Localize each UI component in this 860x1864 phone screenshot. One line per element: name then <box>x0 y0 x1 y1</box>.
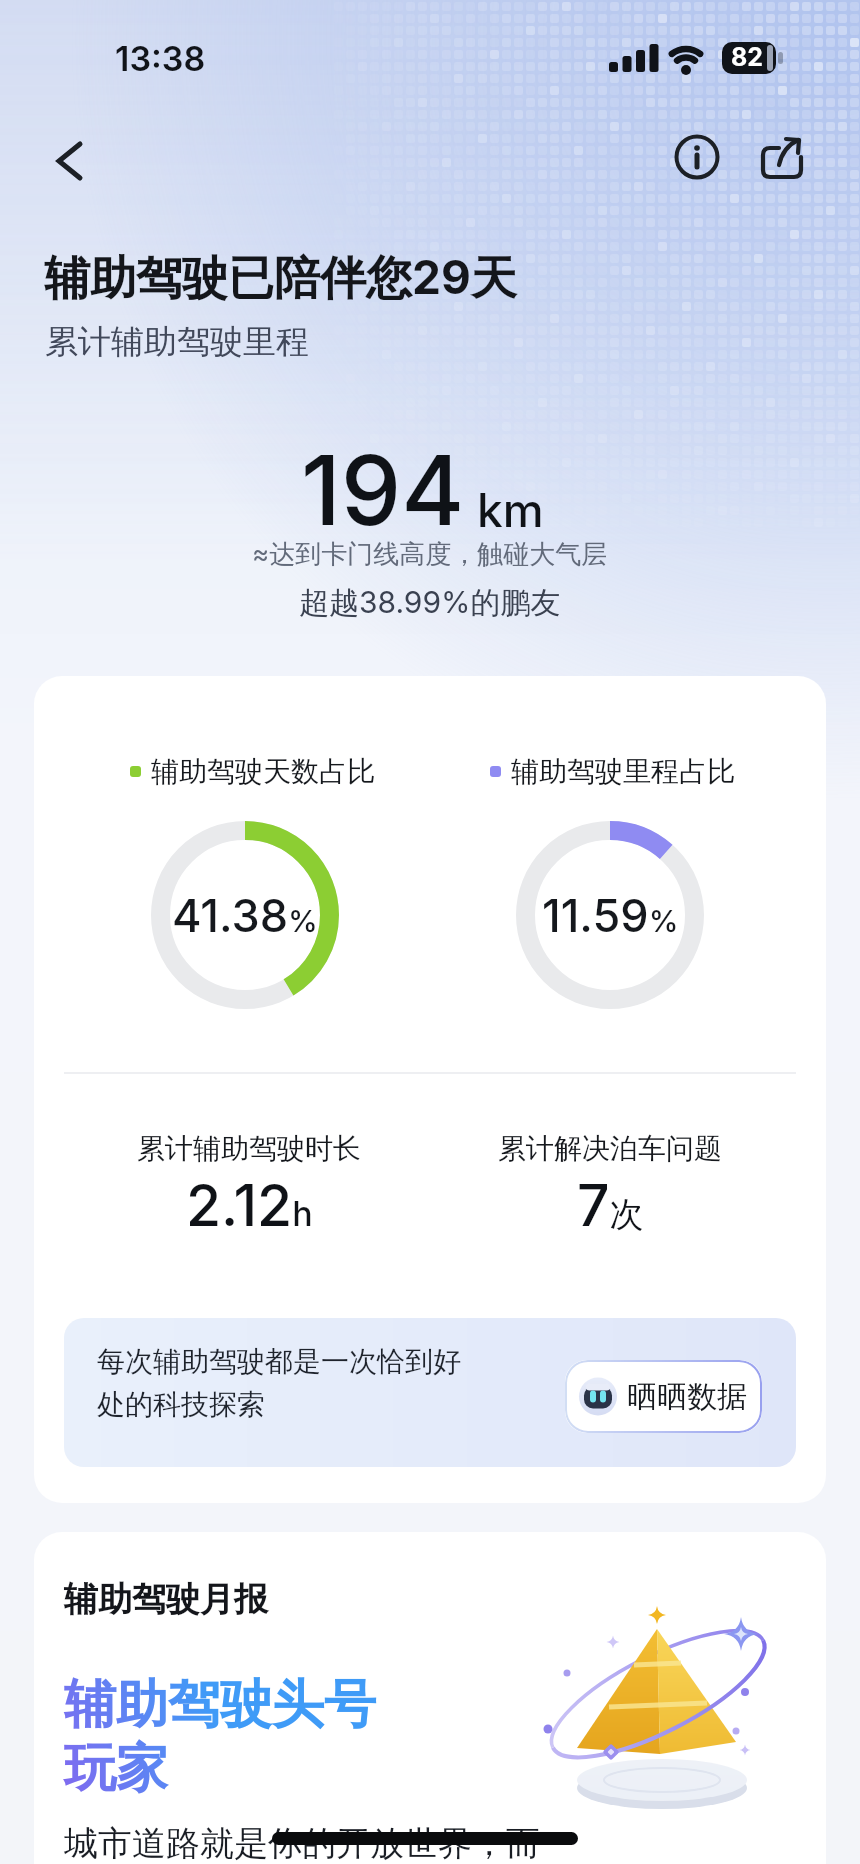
staticText: 累计辅助驾驶里程 <box>45 321 309 363</box>
staticText: 城市道路就是你的开放世界，而 <box>64 1822 540 1864</box>
button[interactable]: 晒晒数据 <box>565 1360 762 1433</box>
staticText: ≈达到卡门线高度，触碰大气层 <box>252 538 608 571</box>
staticText: 辅助驾驶头号 玩家 <box>64 1672 376 1801</box>
button[interactable] <box>669 129 725 185</box>
staticText: 累计解决泊车问题 <box>498 1131 722 1166</box>
staticText: km <box>477 482 544 538</box>
staticText: 每次辅助驾驶都是一次恰到好 处的科技探索 <box>97 1344 461 1422</box>
staticText: 辅助驾驶已陪伴您29天 <box>44 249 517 307</box>
button[interactable] <box>40 140 96 196</box>
staticText: 2.12h <box>186 1171 313 1240</box>
staticText: 辅助驾驶天数占比 <box>151 754 375 789</box>
button[interactable] <box>753 129 809 185</box>
staticText: 194 <box>301 432 465 548</box>
staticText: 41.38% <box>172 888 318 942</box>
staticText: 累计辅助驾驶时长 <box>137 1131 361 1166</box>
staticText: 82 <box>731 42 764 72</box>
staticText: 晒晒数据 <box>627 1378 747 1416</box>
staticText: 超越38.99%的鹏友 <box>299 584 561 622</box>
staticText: 11.59% <box>542 888 679 942</box>
staticText: 辅助驾驶月报 <box>64 1578 268 1621</box>
staticText: 7次 <box>577 1171 644 1240</box>
staticText: 辅助驾驶里程占比 <box>511 754 735 789</box>
staticText: 13:38 <box>115 38 206 79</box>
